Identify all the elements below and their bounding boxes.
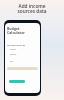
staticText: Tax	[10, 60, 14, 63]
staticText: Budget Calculator	[7, 26, 25, 35]
staticText: Add income sources data	[0, 3, 64, 15]
staticText: Rental	[10, 53, 17, 56]
button[interactable]	[7, 67, 38, 70]
button[interactable]: Rental	[7, 53, 38, 57]
staticText: Income Sources	[7, 43, 26, 46]
staticText: Salary	[10, 48, 16, 51]
button[interactable]	[9, 80, 25, 83]
button[interactable]: Tax	[7, 60, 38, 64]
button[interactable]: Salary	[7, 48, 38, 52]
